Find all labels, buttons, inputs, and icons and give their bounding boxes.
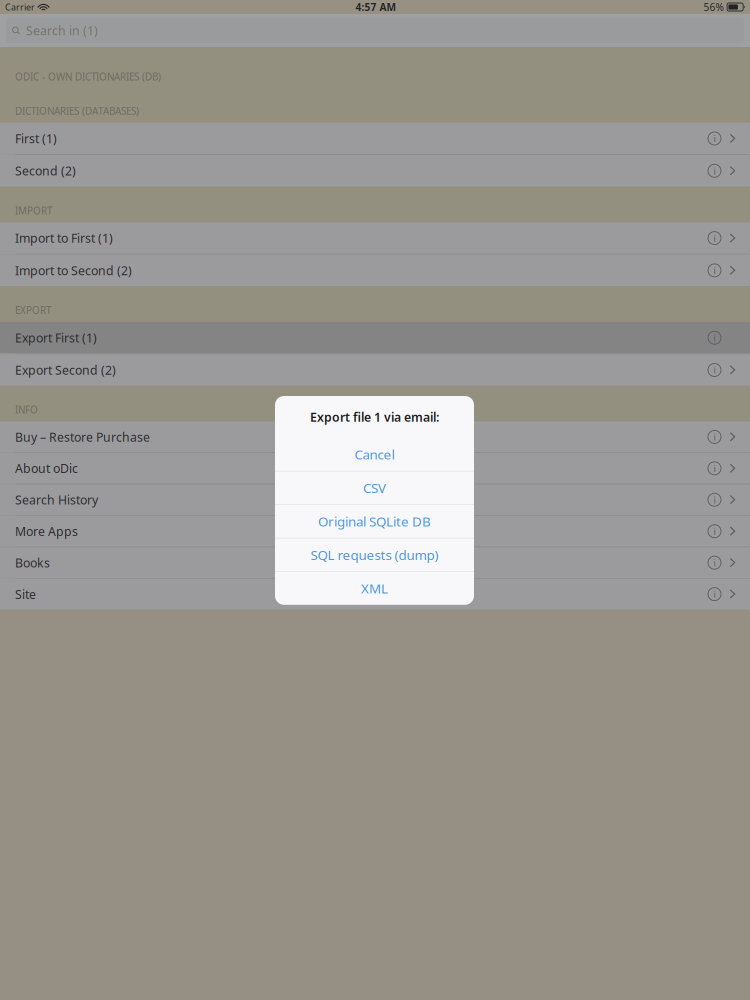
staticText: CSV (363, 479, 386, 497)
button[interactable]: SQL requests (dump) (275, 538, 474, 571)
staticText: About oDic (15, 460, 78, 477)
staticText: First (1) (15, 130, 57, 147)
staticText: DICTIONARIES (DATABASES) (15, 104, 139, 118)
button[interactable]: Cancel (275, 438, 474, 471)
staticText: Export Second (2) (15, 362, 116, 378)
staticText: i (713, 525, 715, 538)
staticText: i (713, 232, 715, 244)
staticText: i (713, 364, 715, 376)
button[interactable]: About oDic (0, 453, 750, 484)
button[interactable]: Original SQLite DB (275, 505, 474, 538)
button[interactable]: XML (275, 572, 474, 605)
staticText: Carrier (5, 1, 35, 13)
staticText: i (713, 430, 715, 443)
staticText: Site (15, 586, 36, 602)
staticText: ODIC - OWN DICTIONARIES (DB) (15, 70, 161, 83)
button[interactable]: Import to Second (2) (0, 255, 750, 286)
staticText: Import to Second (2) (15, 262, 132, 279)
staticText: Books (15, 554, 50, 571)
button[interactable]: Books (0, 547, 750, 578)
staticText: EXPORT (15, 303, 51, 317)
staticText: IMPORT (15, 204, 52, 217)
staticText: i (713, 462, 715, 475)
staticText: INFO (15, 403, 38, 416)
staticText: i (713, 331, 715, 344)
button[interactable]: Second (2) (0, 155, 750, 187)
staticText: Cancel (354, 445, 394, 463)
staticText: i (713, 556, 715, 569)
staticText: Search History (15, 491, 98, 508)
button[interactable]: Export Second (2) (0, 354, 750, 386)
staticText: i (713, 493, 715, 506)
staticText: Import to First (1) (15, 230, 113, 246)
staticText: 56% (704, 0, 724, 14)
staticText: Second (2) (15, 162, 76, 179)
staticText: 4:57 AM (356, 0, 397, 14)
staticText: i (713, 588, 715, 600)
button[interactable]: More Apps (0, 516, 750, 547)
button[interactable]: First (1) (0, 123, 750, 154)
staticText: i (713, 132, 715, 145)
staticText: Search in (1) (26, 22, 98, 39)
staticText: i (713, 264, 715, 277)
staticText: More Apps (15, 523, 78, 540)
button[interactable]: Export First (1) (0, 322, 750, 353)
staticText: XML (361, 579, 388, 597)
staticText: Export First (1) (15, 329, 97, 346)
button[interactable]: Site (0, 579, 750, 610)
staticText: SQL requests (dump) (310, 546, 438, 564)
staticText: Export file 1 via email: (310, 409, 439, 425)
staticText: Buy – Restore Purchase (15, 428, 150, 445)
button[interactable]: Buy – Restore Purchase (0, 421, 750, 452)
staticText: Original SQLite DB (318, 512, 431, 530)
button[interactable]: Search History (0, 484, 750, 515)
button[interactable]: Import to First (1) (0, 222, 750, 254)
staticText: i (713, 164, 715, 177)
button[interactable]: CSV (275, 471, 474, 504)
